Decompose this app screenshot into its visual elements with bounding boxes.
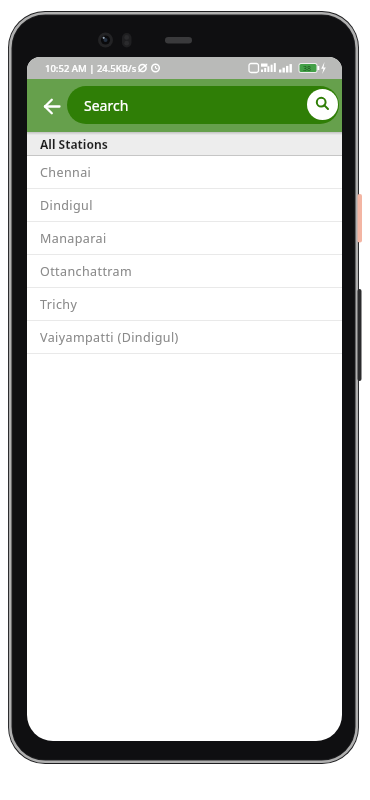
staticText: Chennai [40, 164, 92, 181]
staticText: Ottanchattram [40, 263, 133, 280]
staticText: Search [84, 96, 129, 115]
button[interactable]: Ottanchattram [27, 255, 342, 287]
button[interactable]: Trichy [27, 288, 342, 320]
button[interactable]: Dindigul [27, 189, 342, 221]
staticText: Trichy [40, 296, 78, 313]
button[interactable]: Chennai [27, 156, 342, 188]
button[interactable]: Manaparai [27, 222, 342, 254]
button[interactable] [38, 92, 66, 120]
staticText: Dindigul [40, 197, 93, 214]
button[interactable]: Search [67, 86, 339, 124]
staticText: 10:52 AM | 24.5KB/s [45, 62, 137, 75]
staticText: Vaiyampatti (Dindigul) [40, 329, 179, 346]
staticText: All Stations [40, 136, 108, 152]
staticText: Manaparai [40, 230, 107, 247]
staticText: 38 [303, 64, 312, 74]
button[interactable] [307, 89, 338, 120]
button[interactable]: Vaiyampatti (Dindigul) [27, 321, 342, 353]
